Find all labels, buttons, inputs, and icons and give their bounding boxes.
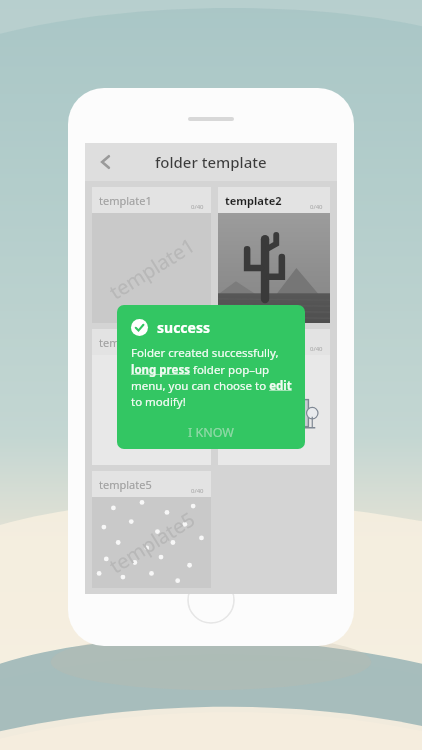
staticText: template5 xyxy=(99,477,152,492)
staticText: 0/40 xyxy=(191,487,204,495)
staticText: 0/40 xyxy=(191,345,204,353)
staticText: template1 xyxy=(104,232,200,305)
staticText: 0/40 xyxy=(310,345,323,353)
staticText: success xyxy=(157,318,210,337)
staticText: template1 xyxy=(99,193,152,208)
button[interactable]: I KNOW xyxy=(117,415,305,449)
staticText: template2 xyxy=(225,193,282,208)
staticText: template3 xyxy=(99,335,152,350)
button[interactable]: Back xyxy=(89,145,123,179)
button[interactable]: template1 xyxy=(92,187,211,323)
button[interactable]: template4 xyxy=(218,329,330,465)
staticText: template5 xyxy=(104,506,200,579)
staticText: 0/40 xyxy=(310,203,323,211)
staticText: 0/40 xyxy=(191,203,204,211)
staticText: folder template xyxy=(155,152,267,172)
staticText: Folder created successfully, long press … xyxy=(131,345,292,409)
staticText: I KNOW xyxy=(188,424,234,441)
button[interactable]: template3 xyxy=(92,329,211,465)
button[interactable]: template2 xyxy=(218,187,330,323)
staticText: template4 xyxy=(225,335,278,350)
button[interactable]: template5 xyxy=(92,471,211,588)
